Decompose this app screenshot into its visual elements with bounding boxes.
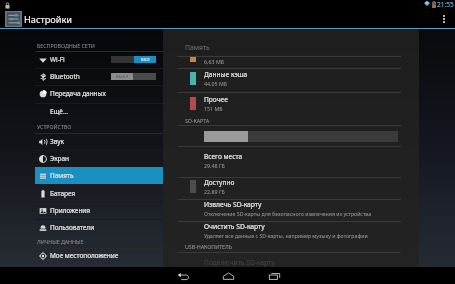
- button[interactable]: Bluetooth: [35, 68, 163, 85]
- staticText: Экран: [50, 154, 70, 163]
- staticText: 29,48 ГБ: [204, 162, 225, 169]
- staticText: Wi-Fi: [50, 55, 65, 64]
- staticText: Подключить SD-карту: [204, 258, 275, 267]
- button[interactable]: Доступно: [190, 177, 419, 196]
- staticText: Удаляет все данные с SD-карты, например …: [204, 232, 368, 239]
- staticText: Приложения: [50, 206, 91, 215]
- button[interactable]: Экран: [35, 150, 163, 167]
- button[interactable]: Всего места: [190, 146, 419, 174]
- staticText: Извлечь SD-карту: [204, 200, 262, 209]
- button[interactable]: Wi-Fi: [35, 51, 163, 68]
- button[interactable]: Приложения: [35, 202, 163, 219]
- button[interactable]: Ещё...: [35, 103, 163, 120]
- staticText: 6,63 МБ: [204, 58, 224, 65]
- staticText: ВКЛ: [141, 57, 150, 62]
- staticText: БЕСПРОВОДНЫЕ СЕТИ: [37, 42, 95, 49]
- staticText: Память: [185, 43, 210, 52]
- staticText: Bluetooth: [50, 72, 80, 81]
- staticText: УСТРОЙСТВО: [37, 123, 72, 130]
- button[interactable]: Мое местоположение: [35, 247, 163, 264]
- staticText: Всего места: [204, 152, 243, 161]
- staticText: Передача данных: [50, 89, 106, 98]
- button[interactable]: Звук: [35, 133, 163, 150]
- staticText: Батарея: [50, 189, 76, 198]
- staticText: Данные кэша: [204, 70, 248, 79]
- staticText: ВЫКЛ: [116, 74, 129, 79]
- staticText: Память: [50, 171, 74, 180]
- staticText: Мое местоположение: [50, 251, 119, 260]
- button[interactable]: Очистить SD-карту: [204, 221, 419, 239]
- button[interactable]: Back: [174, 267, 192, 284]
- staticText: 151 МБ: [204, 105, 223, 112]
- button[interactable]: Извлечь SD-карту: [204, 199, 419, 217]
- button[interactable]: More options: [436, 10, 452, 28]
- staticText: 22,89 ГБ: [204, 188, 225, 195]
- staticText: Настройки: [24, 13, 73, 26]
- staticText: 44,05 МБ: [204, 80, 227, 87]
- staticText: ЛИЧНЫЕ ДАННЫЕ: [37, 238, 84, 245]
- staticText: Пользователи: [50, 223, 95, 232]
- staticText: Отключение SD-карты для безопасного извл…: [204, 210, 372, 217]
- staticText: 21:55: [437, 0, 454, 9]
- staticText: Звук: [50, 137, 64, 146]
- button[interactable]: Батарея: [35, 185, 163, 202]
- staticText: USB-НАКОПИТЕЛЬ: [185, 243, 232, 250]
- button[interactable]: Прочее: [190, 92, 419, 114]
- staticText: Очистить SD-карту: [204, 222, 265, 231]
- staticText: Ещё...: [50, 107, 69, 116]
- button[interactable]: Передача данных: [35, 85, 163, 102]
- staticText: SD-КАРТА: [185, 117, 210, 124]
- button[interactable]: Память: [35, 167, 163, 184]
- button[interactable]: Home: [219, 267, 237, 284]
- button[interactable]: Данные кэша: [190, 68, 419, 89]
- staticText: Прочее: [204, 95, 228, 104]
- staticText: Доступно: [204, 178, 235, 187]
- button[interactable]: Recent apps: [265, 267, 283, 284]
- button[interactable]: Пользователи: [35, 219, 163, 236]
